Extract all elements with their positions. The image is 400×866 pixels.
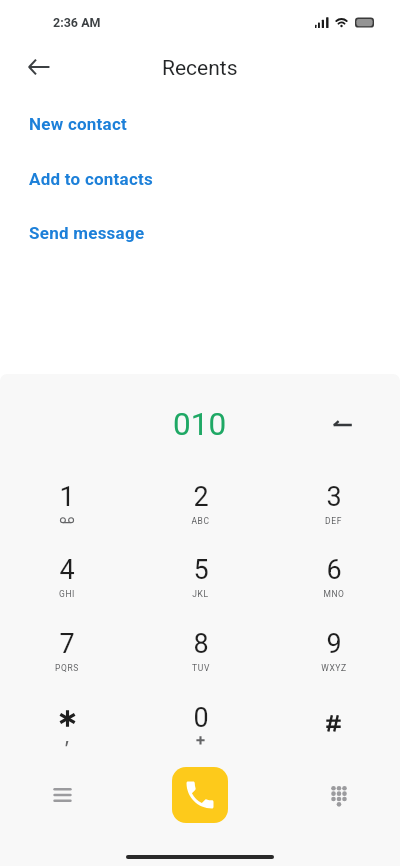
button[interactable]: New contact (0, 101, 400, 147)
staticText: 5 (193, 554, 209, 586)
staticText: 7 (59, 628, 75, 660)
staticText: New contact (29, 114, 128, 134)
button[interactable]: Dialpad (317, 774, 361, 818)
staticText: 010 (173, 406, 227, 443)
staticText: MNO (323, 589, 345, 599)
staticText: 2:36 AM (53, 15, 101, 30)
button[interactable]: Call history (40, 773, 84, 817)
staticText: PQRS (55, 663, 79, 673)
staticText: 1 (59, 481, 75, 513)
button[interactable]: 9 (267, 620, 400, 694)
button[interactable]: 8 (134, 620, 267, 694)
button[interactable]: 0 (134, 694, 267, 768)
button[interactable]: 6 (267, 546, 400, 620)
staticText: JKL (192, 589, 209, 599)
button[interactable]: Add to contacts (0, 156, 400, 202)
button[interactable] (0, 694, 134, 768)
button[interactable]: 2 (134, 473, 267, 547)
staticText: 0 (193, 702, 209, 734)
button[interactable]: Send message (0, 210, 400, 256)
staticText: Send message (29, 223, 145, 243)
button[interactable]: 1 (0, 473, 134, 547)
staticText: Add to contacts (29, 169, 154, 189)
staticText: 2 (193, 481, 209, 513)
staticText: ABC (191, 516, 210, 526)
button[interactable]: 7 (0, 620, 134, 694)
staticText: 3 (326, 481, 342, 513)
button[interactable]: Call (172, 767, 228, 823)
staticText: DEF (325, 516, 342, 526)
staticText: 9 (326, 628, 342, 660)
staticText: WXYZ (321, 663, 347, 673)
button[interactable] (267, 694, 400, 768)
button[interactable]: Backspace (320, 401, 364, 445)
staticText: TUV (192, 663, 210, 673)
staticText: 8 (193, 628, 209, 660)
button[interactable]: 3 (267, 473, 400, 547)
button[interactable]: Back (19, 47, 59, 87)
button[interactable]: 5 (134, 546, 267, 620)
staticText: GHI (59, 589, 75, 599)
staticText: 4 (59, 554, 75, 586)
button[interactable]: 4 (0, 546, 134, 620)
staticText: 6 (326, 554, 342, 586)
staticText: Recents (162, 56, 238, 81)
